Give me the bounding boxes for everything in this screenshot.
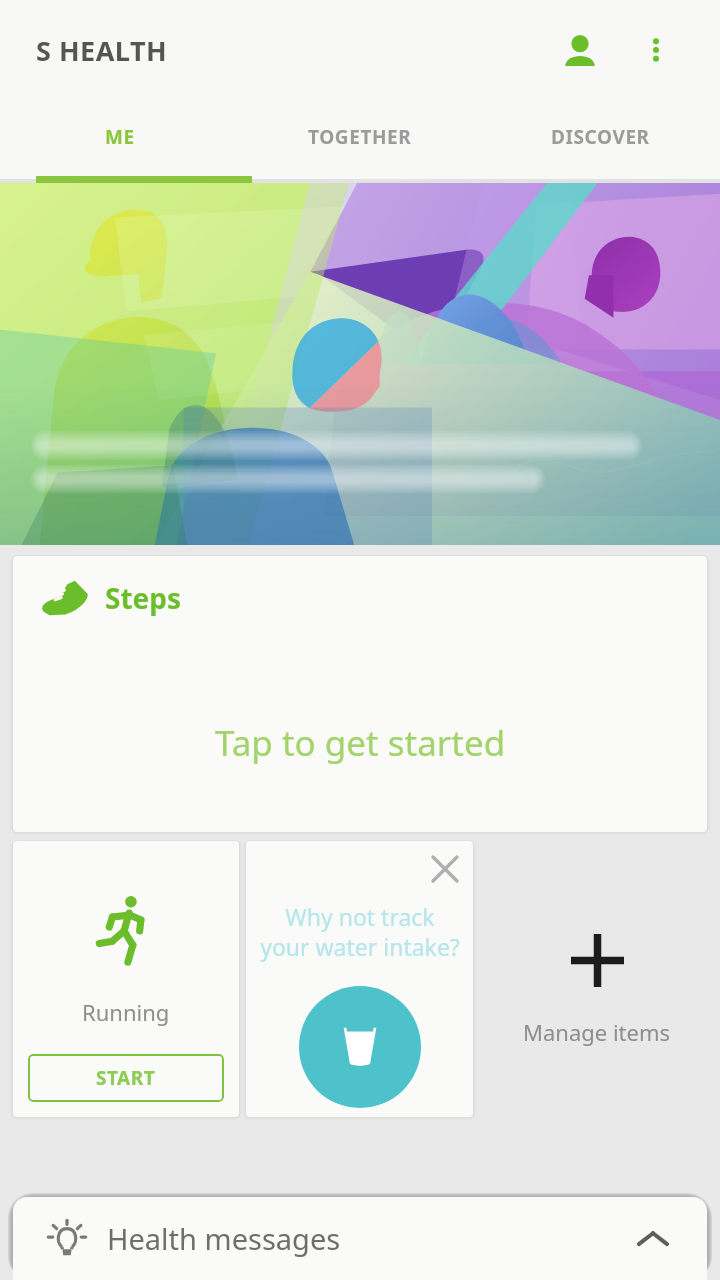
button[interactable]: Profile — [552, 22, 608, 78]
staticText: Tap to get started — [215, 719, 506, 767]
staticText: Why not track your water intake? — [260, 901, 460, 963]
button[interactable]: ME — [0, 100, 240, 183]
button[interactable]: Manage items — [473, 841, 720, 1117]
button[interactable]: More options — [628, 22, 684, 78]
button[interactable]: Steps — [13, 556, 707, 832]
staticText: DISCOVER — [551, 124, 650, 150]
staticText: S HEALTH — [36, 32, 168, 69]
button[interactable] — [0, 183, 720, 545]
button[interactable]: TOGETHER — [240, 100, 480, 183]
staticText: START — [96, 1065, 156, 1091]
staticText: TOGETHER — [308, 124, 412, 150]
staticText: Steps — [105, 579, 182, 617]
button[interactable]: Running — [13, 841, 239, 1117]
staticText: Running — [82, 997, 170, 1027]
button[interactable]: Close — [246, 841, 473, 1117]
staticText: ME — [105, 124, 135, 150]
staticText: Manage items — [523, 1017, 671, 1047]
button[interactable]: START — [28, 1054, 224, 1102]
button[interactable]: DISCOVER — [480, 100, 720, 183]
button[interactable]: Health messages — [13, 1197, 707, 1280]
button[interactable]: Close — [417, 841, 473, 897]
staticText: Health messages — [107, 1219, 341, 1258]
